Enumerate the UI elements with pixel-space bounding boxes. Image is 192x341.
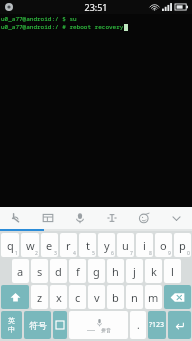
- button[interactable]: j: [126, 259, 143, 283]
- staticText: 9: [168, 250, 171, 257]
- staticText: n: [131, 290, 138, 305]
- staticText: q: [7, 238, 14, 253]
- staticText: ?123: [149, 320, 165, 330]
- button[interactable]: v: [88, 285, 105, 309]
- button[interactable]: i: [136, 233, 153, 257]
- button[interactable]: s: [31, 259, 48, 283]
- staticText: u: [122, 238, 129, 253]
- button[interactable]: Enter: [168, 311, 191, 339]
- staticText: x: [56, 290, 62, 305]
- staticText: 4: [73, 250, 76, 257]
- button[interactable]: Hide keyboard: [160, 207, 192, 229]
- button[interactable]: q: [1, 233, 19, 257]
- button[interactable]: y: [98, 233, 115, 257]
- button[interactable]: e: [41, 233, 58, 257]
- staticText: h: [112, 264, 119, 279]
- staticText: b: [112, 290, 119, 305]
- staticText: t: [86, 238, 90, 253]
- button[interactable]: p: [174, 233, 191, 257]
- button[interactable]: m: [145, 285, 162, 309]
- staticText: u0_a77@android:/ # reboot recovery: [1, 23, 124, 31]
- staticText: o: [160, 238, 167, 253]
- button[interactable]: Period: [130, 311, 146, 339]
- staticText: i: [143, 238, 146, 253]
- staticText: c: [75, 290, 81, 305]
- staticText: 6: [111, 250, 114, 257]
- staticText: u0_a77@android:/ $ su: [1, 15, 77, 23]
- button[interactable]: w: [21, 233, 39, 257]
- button[interactable]: u: [117, 233, 134, 257]
- staticText: .: [137, 318, 140, 332]
- button[interactable]: z: [31, 285, 48, 309]
- button[interactable]: g: [88, 259, 105, 283]
- button[interactable]: b: [107, 285, 124, 309]
- button[interactable]: k: [145, 259, 162, 283]
- button[interactable]: f: [69, 259, 86, 283]
- staticText: a: [17, 264, 24, 279]
- staticText: d: [55, 264, 62, 279]
- staticText: 8: [149, 250, 152, 257]
- button[interactable]: Emoji: [128, 207, 160, 229]
- button[interactable]: Clipboard: [32, 207, 64, 229]
- button[interactable]: Move cursor: [96, 207, 128, 229]
- staticText: 5: [92, 250, 95, 257]
- staticText: 拼音: [101, 327, 111, 333]
- button[interactable]: Numbers: [148, 311, 166, 339]
- staticText: p: [179, 238, 186, 253]
- staticText: 3: [54, 250, 57, 257]
- staticText: r: [66, 238, 71, 253]
- button[interactable]: d: [50, 259, 67, 283]
- staticText: 0: [187, 250, 190, 257]
- button[interactable]: o: [155, 233, 172, 257]
- staticText: 中: [8, 325, 15, 334]
- staticText: v: [94, 290, 100, 305]
- staticText: k: [151, 264, 157, 279]
- staticText: s: [37, 264, 43, 279]
- staticText: 英: [8, 316, 15, 325]
- button[interactable]: Voice input: [64, 207, 96, 229]
- staticText: 符号: [29, 320, 47, 331]
- button[interactable]: Handwriting: [0, 207, 32, 229]
- staticText: 1: [15, 250, 18, 257]
- button[interactable]: t: [79, 233, 96, 257]
- staticText: g: [93, 264, 100, 279]
- staticText: e: [46, 238, 53, 253]
- button[interactable]: x: [50, 285, 67, 309]
- button[interactable]: r: [60, 233, 77, 257]
- staticText: f: [76, 264, 80, 279]
- button[interactable]: Backspace: [164, 285, 191, 309]
- button[interactable]: n: [126, 285, 143, 309]
- staticText: l: [171, 264, 174, 279]
- staticText: w: [26, 238, 35, 253]
- staticText: y: [104, 238, 110, 253]
- staticText: j: [133, 264, 136, 279]
- button[interactable]: c: [69, 285, 86, 309]
- button[interactable]: Space: [69, 311, 128, 339]
- staticText: 2: [35, 250, 38, 257]
- staticText: m: [148, 290, 159, 305]
- button[interactable]: Shift: [1, 285, 29, 309]
- staticText: 7: [130, 250, 133, 257]
- button[interactable]: h: [107, 259, 124, 283]
- button[interactable]: Language: [1, 311, 22, 339]
- staticText: z: [37, 290, 43, 305]
- button[interactable]: a: [12, 259, 29, 283]
- staticText: 23:51: [84, 1, 108, 13]
- button[interactable]: Symbols: [24, 311, 51, 339]
- button[interactable]: Clipboard: [53, 311, 67, 339]
- button[interactable]: l: [164, 259, 181, 283]
